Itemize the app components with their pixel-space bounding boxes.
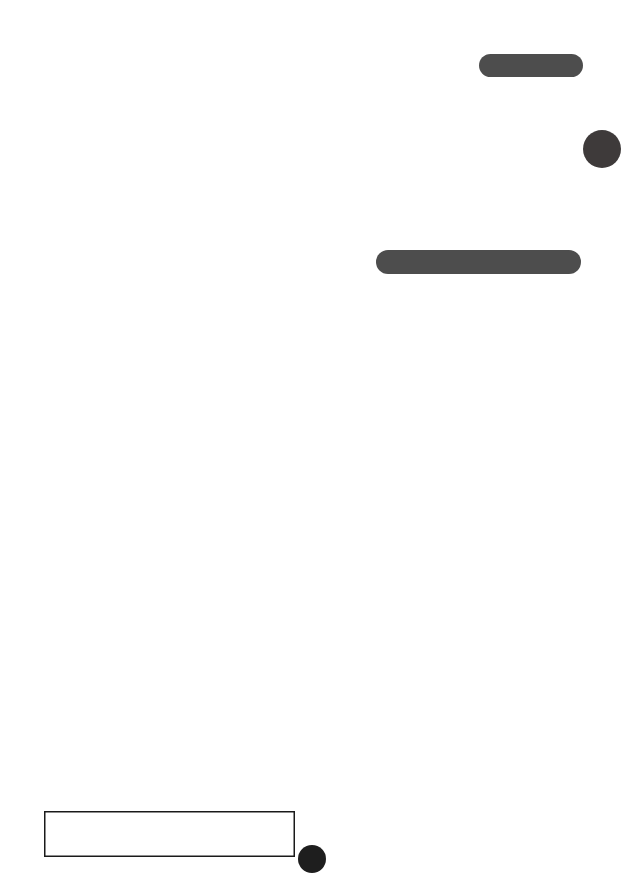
- button[interactable]: Search: [376, 250, 581, 274]
- button[interactable]: Profile: [583, 130, 621, 168]
- button[interactable]: Send: [298, 845, 326, 873]
- button[interactable]: Message input field: [44, 811, 295, 857]
- button[interactable]: Action chip: [479, 54, 583, 77]
